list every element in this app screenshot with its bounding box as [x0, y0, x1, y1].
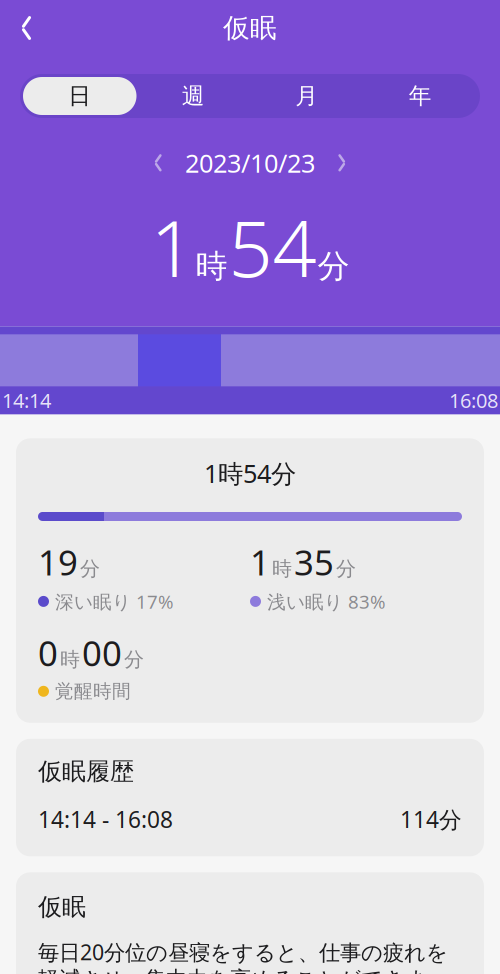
button[interactable]: 次の日: [329, 149, 357, 177]
staticText: 毎日20分位の昼寝をすると、仕事の疲れを軽減させ、集中力を高めることができます。: [38, 938, 448, 974]
staticText: 2023/10/23: [185, 146, 315, 180]
staticText: 仮眠: [223, 12, 277, 44]
staticText: 分: [80, 556, 100, 581]
staticText: 14:14 - 16:08: [38, 804, 173, 834]
staticText: 114分: [400, 804, 462, 834]
staticText: 仮眠履歴: [38, 757, 134, 786]
staticText: 深い眠り 17%: [55, 589, 174, 614]
staticText: 54: [228, 196, 316, 298]
button[interactable]: 14:14 - 16:08: [38, 792, 462, 846]
staticText: 14:14: [2, 387, 51, 414]
staticText: 月: [295, 82, 318, 110]
staticText: 時: [195, 247, 227, 286]
staticText: 16:08: [449, 387, 498, 414]
button[interactable]: 週: [136, 77, 250, 115]
staticText: 0: [38, 630, 58, 676]
staticText: 日: [68, 82, 91, 110]
staticText: 分: [124, 647, 144, 672]
staticText: 19: [38, 539, 78, 585]
staticText: 分: [336, 556, 356, 581]
staticText: 週: [182, 82, 205, 110]
staticText: 年: [409, 82, 432, 110]
button[interactable]: 戻る: [0, 7, 50, 49]
staticText: 00: [82, 630, 122, 676]
staticText: 仮眠: [38, 892, 86, 922]
button[interactable]: 日: [23, 77, 136, 115]
button[interactable]: 年: [363, 77, 477, 115]
staticText: 分: [317, 247, 349, 286]
staticText: 浅い眠り 83%: [267, 589, 386, 614]
staticText: 1: [250, 539, 270, 585]
staticText: 35: [294, 539, 334, 585]
staticText: 1時54分: [204, 456, 296, 490]
staticText: 時: [272, 556, 292, 581]
staticText: 覚醒時間: [55, 680, 131, 703]
staticText: 1: [150, 196, 194, 298]
button[interactable]: 月: [250, 77, 363, 115]
button[interactable]: 前の日: [143, 149, 171, 177]
staticText: 時: [60, 647, 80, 672]
